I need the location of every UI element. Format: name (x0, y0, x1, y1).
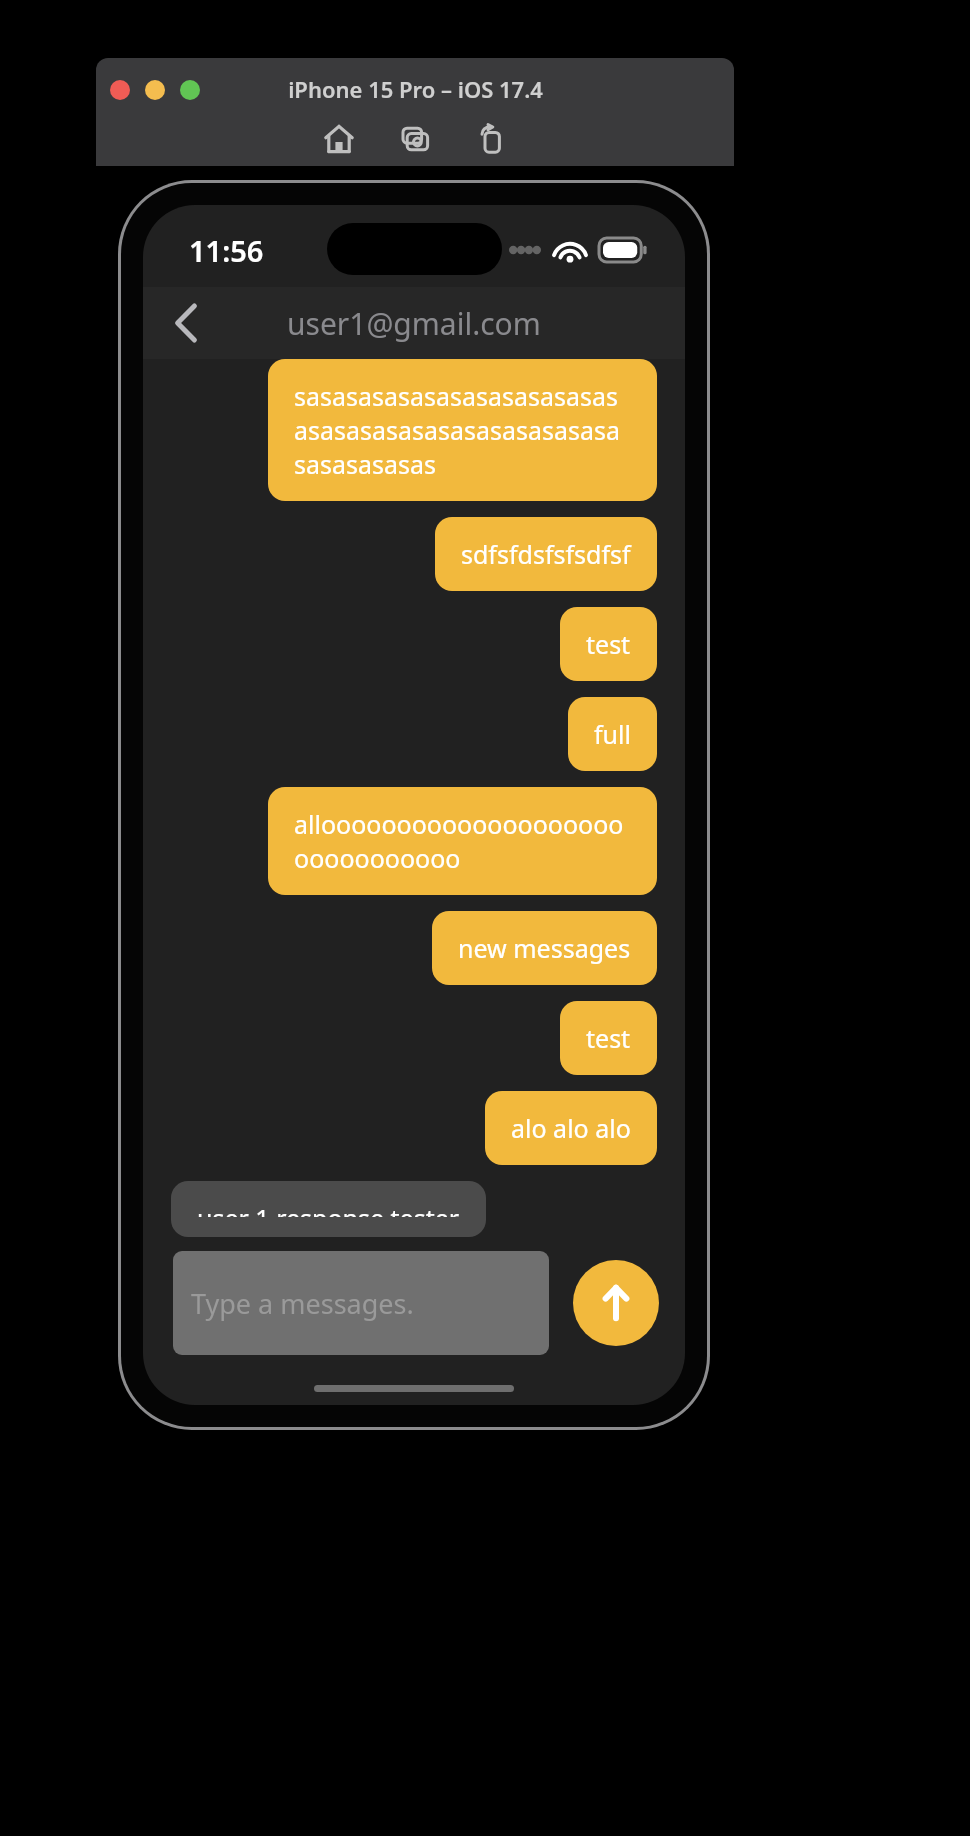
button[interactable]: alo alo alo (485, 1091, 657, 1165)
staticText: sasasasasasasasasasasasasasasasasasasasa… (294, 379, 631, 481)
button[interactable]: Rotate (468, 116, 514, 162)
button[interactable]: sasasasasasasasasasasasasasasasasasasasa… (268, 359, 657, 501)
staticText: test (586, 627, 631, 661)
button[interactable]: Close (110, 80, 130, 100)
staticText: user1@gmail.com (287, 303, 541, 344)
button[interactable]: test (560, 1001, 657, 1075)
staticText: test (586, 1021, 631, 1055)
staticText: Type a messages. (191, 1285, 414, 1322)
staticText: new messages (458, 931, 631, 965)
staticText: full (594, 717, 631, 751)
staticText: sdfsfdsfsfsdfsf (461, 537, 631, 571)
button[interactable]: full (568, 697, 657, 771)
staticText: allooooooooooooooooooooooooooooooo (294, 807, 631, 875)
button[interactable]: Send (573, 1260, 659, 1346)
button[interactable]: allooooooooooooooooooooooooooooooo (268, 787, 657, 895)
staticText: iPhone 15 Pro – iOS 17.4 (288, 74, 543, 104)
button[interactable]: Home (316, 116, 362, 162)
staticText: user 1 response tester (197, 1201, 460, 1217)
button[interactable]: Maximize (180, 80, 200, 100)
staticText: 11:56 (189, 231, 264, 270)
button[interactable]: Back (157, 294, 215, 352)
button[interactable]: Screenshot (392, 116, 438, 162)
button[interactable]: sdfsfdsfsfsdfsf (435, 517, 657, 591)
button[interactable]: Type a messages. (173, 1251, 549, 1355)
button[interactable]: user 1 response tester (171, 1181, 486, 1237)
button[interactable]: new messages (432, 911, 657, 985)
staticText: alo alo alo (511, 1111, 631, 1145)
button[interactable]: test (560, 607, 657, 681)
button[interactable]: Minimize (145, 80, 165, 100)
